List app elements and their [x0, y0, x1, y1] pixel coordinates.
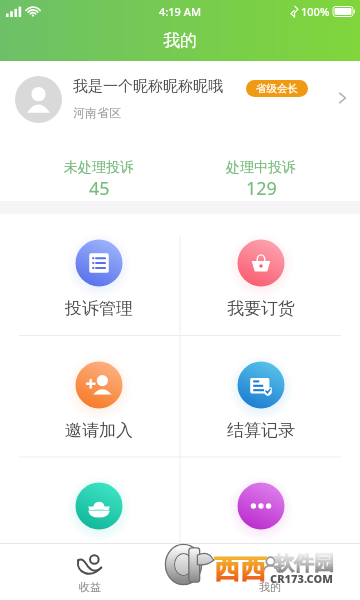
staticText: 129 [246, 176, 277, 201]
staticText: 45 [89, 176, 110, 201]
staticText: 100% [301, 4, 330, 19]
button[interactable]: 处理中投诉 [180, 138, 342, 201]
staticText: 收益明细 [65, 541, 133, 562]
staticText: 我要订货 [227, 298, 295, 319]
staticText: 我的 [259, 580, 281, 594]
staticText: 处理中投诉 [226, 159, 296, 177]
button[interactable]: 投诉管理 [18, 214, 180, 336]
button[interactable]: 结算记录 [180, 336, 342, 458]
button[interactable]: 邀请加入 [18, 336, 180, 458]
staticText: 软件园 [274, 551, 334, 576]
button[interactable]: 收益明细 [18, 457, 180, 579]
staticText: 我是一个昵称昵称昵哦 [73, 77, 223, 96]
button[interactable]: 我要订货 [180, 214, 342, 336]
staticText: 邀请加入 [65, 420, 133, 441]
staticText: 更多 [244, 541, 278, 562]
button[interactable]: 收益 [0, 544, 180, 600]
staticText: 我的 [163, 30, 197, 51]
staticText: 投诉管理 [65, 298, 133, 319]
staticText: 未处理投诉 [64, 159, 134, 177]
staticText: 河南省区 [73, 105, 121, 120]
button[interactable]: 我的 [180, 544, 360, 600]
other: Profile details [336, 90, 348, 106]
button[interactable]: 我是一个昵称昵称昵哦 [0, 61, 360, 138]
staticText: 省级会长 [256, 82, 298, 95]
staticText: 西西 [214, 553, 266, 586]
staticText: 结算记录 [227, 420, 295, 441]
button[interactable]: 未处理投诉 [18, 138, 180, 201]
button[interactable]: 更多 [180, 457, 342, 579]
staticText: 收益 [79, 580, 101, 594]
staticText: CR173.COM [270, 571, 333, 586]
staticText: 4:19 AM [159, 4, 202, 19]
